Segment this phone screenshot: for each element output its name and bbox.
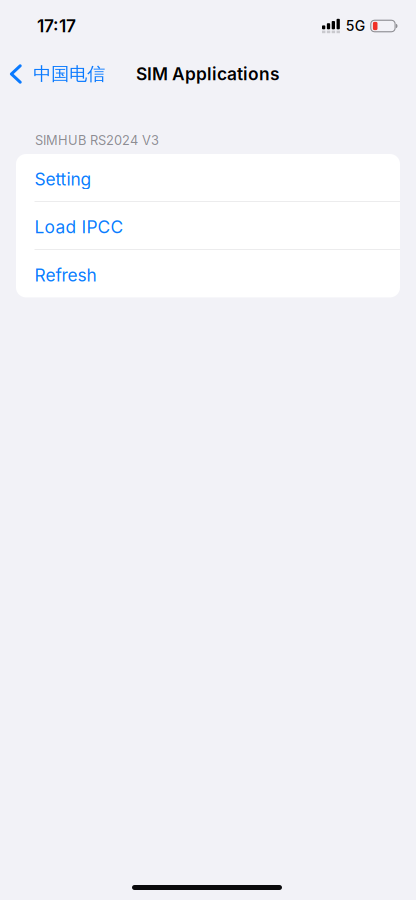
staticText: SIMHUB RS2024 V3	[35, 132, 159, 148]
button[interactable]: Refresh	[16, 250, 400, 297]
staticText: Load IPCC	[34, 216, 123, 237]
staticText: 中国电信	[33, 63, 105, 85]
button[interactable]: Setting	[16, 154, 400, 202]
staticText: SIM Applications	[136, 63, 280, 84]
staticText: Setting	[34, 169, 91, 190]
button[interactable]: Load IPCC	[16, 202, 400, 250]
button[interactable]: 中国电信	[0, 54, 113, 94]
staticText: 5G	[346, 17, 365, 34]
staticText: 17:17	[37, 15, 76, 36]
staticText: Refresh	[34, 265, 96, 286]
